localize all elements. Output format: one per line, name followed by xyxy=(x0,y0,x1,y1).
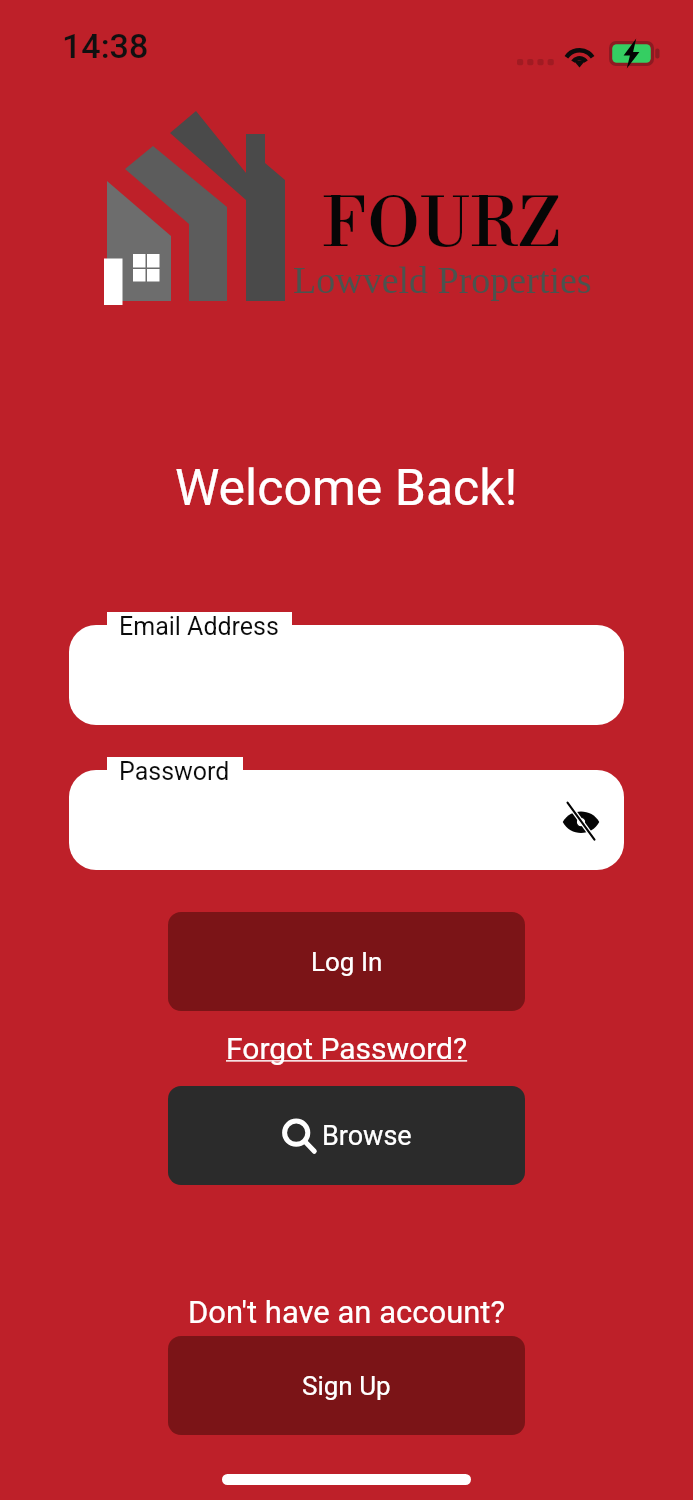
staticText: Browse xyxy=(322,1120,412,1152)
staticText: Forgot Password? xyxy=(226,1031,468,1066)
button[interactable]: Show password xyxy=(69,770,624,870)
button[interactable]: Sign Up xyxy=(168,1336,525,1435)
button[interactable] xyxy=(69,625,624,725)
staticText: Lowveld Properties xyxy=(293,259,592,301)
staticText: Password xyxy=(119,757,230,786)
button[interactable]: Forgot Password? xyxy=(218,1027,476,1070)
staticText: Welcome Back! xyxy=(175,459,518,518)
staticText: Don't have an account? xyxy=(188,1294,506,1330)
staticText: Sign Up xyxy=(302,1371,391,1401)
staticText: Email Address xyxy=(119,612,279,641)
staticText: FOURZ xyxy=(323,185,563,268)
staticText: Log In xyxy=(311,947,383,977)
staticText: 14:38 xyxy=(62,26,149,66)
button[interactable]: Log In xyxy=(168,912,525,1011)
button[interactable]: Browse xyxy=(168,1086,525,1185)
button[interactable]: Show password xyxy=(555,794,607,846)
